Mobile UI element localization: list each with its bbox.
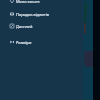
button[interactable]: Моно secure xyxy=(0,0,83,7)
button[interactable]: Дисплей xyxy=(0,20,83,32)
staticText: Моно secure xyxy=(16,0,40,4)
button[interactable]: Порядок віджетів xyxy=(0,8,83,20)
staticText: Розміри xyxy=(16,40,32,45)
staticText: Порядок віджетів xyxy=(16,12,50,17)
staticText: Дисплей xyxy=(16,24,33,29)
button[interactable]: Розміри xyxy=(0,36,83,48)
